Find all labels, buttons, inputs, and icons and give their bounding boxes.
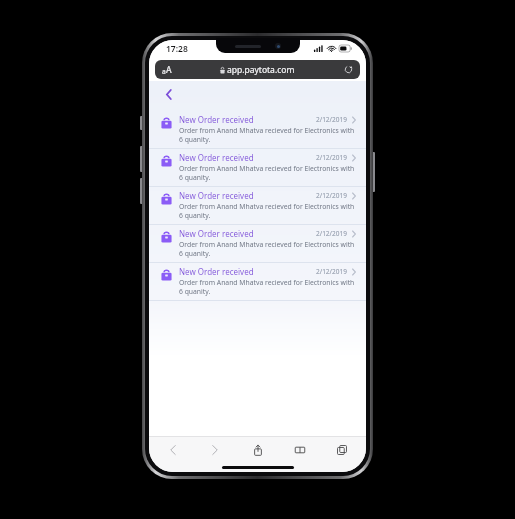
button[interactable]: Text size <box>155 60 360 79</box>
button[interactable]: Forward <box>205 440 225 460</box>
staticText: New Order received <box>179 114 316 125</box>
button[interactable]: Share <box>248 440 268 460</box>
staticText: 2/12/2019 <box>316 191 347 200</box>
staticText: Order from Anand Mhatva recieved for Ele… <box>179 126 356 144</box>
button[interactable]: New Order received <box>149 225 366 263</box>
staticText: app.paytota.com <box>227 64 295 76</box>
staticText: A <box>166 64 172 76</box>
button[interactable]: Tabs <box>332 440 352 460</box>
button[interactable]: Bookmarks <box>290 440 310 460</box>
staticText: Order from Anand Mhatva recieved for Ele… <box>179 202 356 220</box>
staticText: a <box>162 67 166 76</box>
button[interactable]: Text size <box>162 64 172 76</box>
staticText: New Order received <box>179 190 316 201</box>
button[interactable]: New Order received <box>149 263 366 301</box>
button[interactable]: New Order received <box>149 149 366 187</box>
button[interactable]: Reload <box>344 65 353 74</box>
button[interactable]: New Order received <box>149 187 366 225</box>
button[interactable]: New Order received <box>149 111 366 149</box>
staticText: Order from Anand Mhatva recieved for Ele… <box>179 164 356 182</box>
staticText: 2/12/2019 <box>316 115 347 124</box>
staticText: New Order received <box>179 152 316 163</box>
staticText: Order from Anand Mhatva recieved for Ele… <box>179 240 356 258</box>
staticText: New Order received <box>179 266 316 277</box>
staticText: 2/12/2019 <box>316 267 347 276</box>
button[interactable]: Back <box>162 87 176 101</box>
staticText: New Order received <box>179 228 316 239</box>
staticText: 2/12/2019 <box>316 153 347 162</box>
staticText: 17:28 <box>166 43 188 55</box>
staticText: Order from Anand Mhatva recieved for Ele… <box>179 278 356 296</box>
button[interactable]: Back <box>163 440 183 460</box>
staticText: 2/12/2019 <box>316 229 347 238</box>
